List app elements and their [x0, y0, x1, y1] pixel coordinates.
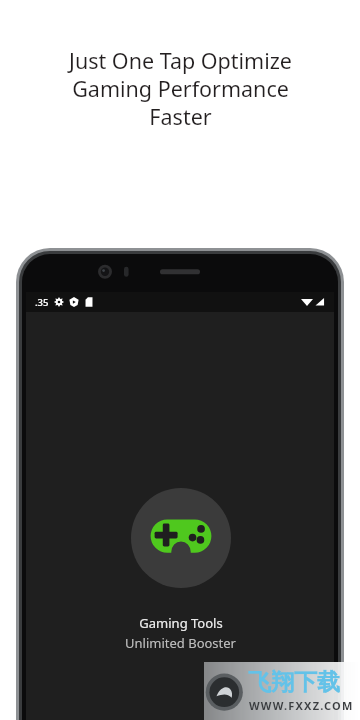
staticText: WWW.FXXZ.COM	[249, 698, 354, 713]
staticText: Unlimited Booster	[125, 634, 236, 652]
staticText: Just One Tap Optimize Gaming Performance…	[69, 46, 292, 131]
staticText: 飞翔下载	[248, 668, 340, 697]
staticText: Gaming Tools	[139, 614, 223, 632]
staticText: .35	[35, 296, 49, 309]
button[interactable]: Gaming Tools	[131, 488, 231, 588]
